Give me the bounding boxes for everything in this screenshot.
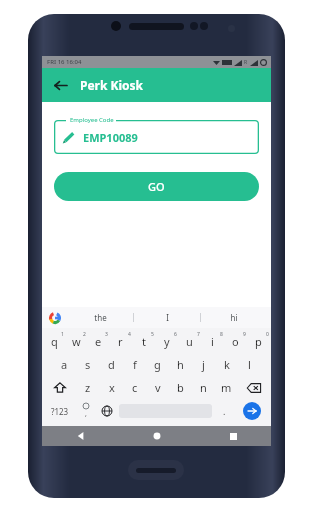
button[interactable]: d [100,353,123,376]
button[interactable]: Home [128,460,184,480]
button[interactable]: r [109,330,132,353]
button[interactable]: Back [42,426,119,446]
staticText: 6 [174,331,177,338]
staticText: 9 [243,331,246,338]
button[interactable]: y [155,330,178,353]
button[interactable]: c [123,376,146,399]
staticText: , [85,409,87,419]
button[interactable]: ?123 [44,399,75,423]
staticText: h [177,357,184,372]
staticText: f [133,357,137,372]
button[interactable]: v [146,376,169,399]
staticText: o [232,334,239,349]
staticText: b [177,380,184,395]
staticText: EMP10089 [83,130,138,145]
button[interactable]: f [123,353,146,376]
staticText: a [61,357,68,372]
staticText: hi [230,312,238,323]
button[interactable]: j [192,353,215,376]
button[interactable]: Google [49,312,61,324]
staticText: k [224,357,230,372]
button[interactable]: z [76,376,100,399]
staticText: p [255,334,262,349]
button[interactable]: h [169,353,192,376]
staticText: ?123 [51,406,69,417]
button[interactable]: Employee Code [54,120,259,154]
button[interactable]: g [146,353,169,376]
staticText: Perk Kiosk [80,77,144,93]
button[interactable]: n [192,376,215,399]
staticText: GO [148,179,165,194]
button[interactable]: Recent apps [195,426,271,446]
staticText: . [223,405,226,417]
staticText: r [118,334,123,349]
button[interactable]: w [65,330,87,353]
staticText: FRI 16 16:04 [47,58,82,66]
staticText: Employee Code [70,116,114,124]
button[interactable]: o [224,330,247,353]
staticText: 4 [128,331,131,338]
staticText: 2 [83,331,86,338]
staticText: 1 [61,331,64,338]
staticText: s [85,357,91,372]
button[interactable]: Backspace [238,376,270,399]
button[interactable]: a [52,353,76,376]
button[interactable]: Shift [43,376,76,399]
staticText: y [164,334,170,349]
staticText: i [211,334,214,349]
button[interactable]: GO [54,172,259,201]
staticText: 3 [105,331,108,338]
staticText: g [154,357,161,372]
button[interactable]: hi [201,307,267,328]
button[interactable]: q [43,330,65,353]
button[interactable]: Back [48,73,72,97]
button[interactable]: Emoji [75,399,96,423]
button[interactable]: Enter [235,399,269,423]
other: Edit [62,131,75,144]
button[interactable]: i [201,330,224,353]
button[interactable]: I [134,307,200,328]
staticText: v [155,380,161,395]
staticText: n [200,380,207,395]
staticText: l [248,357,251,372]
staticText: j [202,357,205,372]
button[interactable]: Change language [96,399,117,423]
button[interactable]: Home [119,426,195,446]
button[interactable]: s [76,353,100,376]
button[interactable]: m [215,376,238,399]
staticText: t [142,334,146,349]
staticText: 8 [220,331,223,338]
button[interactable]: x [100,376,123,399]
button[interactable]: p [247,330,270,353]
staticText: z [85,380,91,395]
staticText: the [94,312,107,323]
staticText: e [95,334,102,349]
button[interactable]: u [178,330,201,353]
button[interactable]: l [238,353,261,376]
button[interactable]: b [169,376,192,399]
staticText: R [244,59,248,66]
staticText: q [51,334,58,349]
staticText: 0 [266,331,269,338]
button[interactable]: . [214,399,235,423]
button[interactable]: the [68,307,133,328]
staticText: m [221,380,232,395]
staticText: 7 [197,331,200,338]
staticText: I [166,312,169,323]
button[interactable]: k [215,353,238,376]
staticText: d [108,357,115,372]
staticText: w [72,334,81,349]
staticText: x [109,380,115,395]
staticText: u [186,334,193,349]
staticText: c [132,380,138,395]
staticText: 5 [151,331,154,338]
button[interactable]: t [132,330,155,353]
button[interactable]: e [87,330,109,353]
